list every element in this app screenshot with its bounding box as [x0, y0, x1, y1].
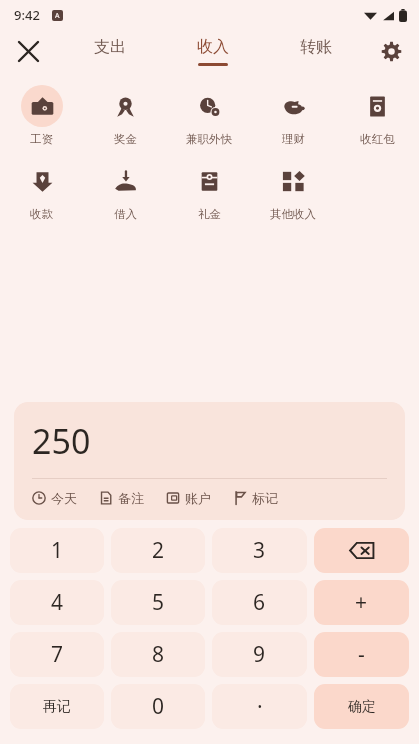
- button[interactable]: ·: [212, 684, 307, 729]
- staticText: 250: [32, 418, 91, 464]
- button[interactable]: 再记: [10, 684, 104, 729]
- button[interactable]: 3: [212, 528, 307, 573]
- button[interactable]: 确定: [314, 684, 409, 729]
- staticText: 理财: [282, 132, 305, 146]
- staticText: ·: [257, 692, 263, 721]
- button[interactable]: 奖金: [83, 78, 167, 153]
- button[interactable]: 借入: [83, 153, 167, 228]
- button[interactable]: 标记: [233, 490, 278, 506]
- button[interactable]: Close: [8, 31, 48, 71]
- staticText: 收入: [197, 37, 229, 57]
- button[interactable]: 理财: [251, 78, 335, 153]
- staticText: A: [55, 11, 60, 21]
- button[interactable]: 2: [111, 528, 205, 573]
- button[interactable]: 5: [111, 580, 205, 625]
- staticText: 1: [51, 536, 64, 565]
- button[interactable]: 1: [10, 528, 104, 573]
- staticText: 转账: [300, 37, 332, 57]
- button[interactable]: 转账: [264, 30, 367, 72]
- button[interactable]: Settings: [371, 31, 411, 71]
- staticText: 9:42: [14, 6, 40, 24]
- button[interactable]: 6: [212, 580, 307, 625]
- button[interactable]: 账户: [166, 490, 211, 506]
- button[interactable]: +: [314, 580, 409, 625]
- button[interactable]: 收红包: [335, 78, 419, 153]
- staticText: 今天: [51, 490, 77, 506]
- staticText: 6: [253, 588, 266, 617]
- button[interactable]: 8: [111, 632, 205, 677]
- button[interactable]: 其他收入: [251, 153, 335, 228]
- staticText: 9: [253, 640, 266, 669]
- staticText: 奖金: [114, 132, 137, 146]
- button[interactable]: 支出: [58, 30, 161, 72]
- staticText: 再记: [43, 698, 71, 716]
- staticText: 5: [152, 588, 165, 617]
- button[interactable]: 4: [10, 580, 104, 625]
- staticText: 其他收入: [270, 207, 316, 221]
- staticText: 收款: [30, 207, 53, 221]
- button[interactable]: 9: [212, 632, 307, 677]
- staticText: 2: [152, 536, 165, 565]
- button[interactable]: 收款: [0, 153, 83, 228]
- staticText: 3: [253, 536, 266, 565]
- button[interactable]: 工资: [0, 78, 83, 153]
- button[interactable]: 0: [111, 684, 205, 729]
- button[interactable]: 今天: [32, 490, 77, 506]
- staticText: 借入: [114, 207, 137, 221]
- staticText: 收红包: [360, 132, 395, 146]
- staticText: 工资: [30, 132, 53, 146]
- staticText: 8: [152, 640, 165, 669]
- staticText: 礼金: [198, 207, 221, 221]
- staticText: 0: [152, 692, 165, 721]
- staticText: 账户: [185, 490, 211, 506]
- button[interactable]: 收入: [161, 30, 264, 72]
- staticText: 4: [51, 588, 64, 617]
- button[interactable]: 备注: [99, 490, 144, 506]
- button[interactable]: Backspace: [314, 528, 409, 573]
- staticText: -: [358, 640, 365, 669]
- button[interactable]: -: [314, 632, 409, 677]
- staticText: 备注: [118, 490, 144, 506]
- button[interactable]: 礼金: [167, 153, 251, 228]
- staticText: 7: [51, 640, 64, 669]
- button[interactable]: 7: [10, 632, 104, 677]
- staticText: +: [355, 588, 368, 617]
- staticText: 标记: [252, 490, 278, 506]
- staticText: 支出: [94, 37, 126, 57]
- button[interactable]: 兼职外快: [167, 78, 251, 153]
- staticText: 兼职外快: [186, 132, 232, 146]
- staticText: 确定: [348, 698, 376, 716]
